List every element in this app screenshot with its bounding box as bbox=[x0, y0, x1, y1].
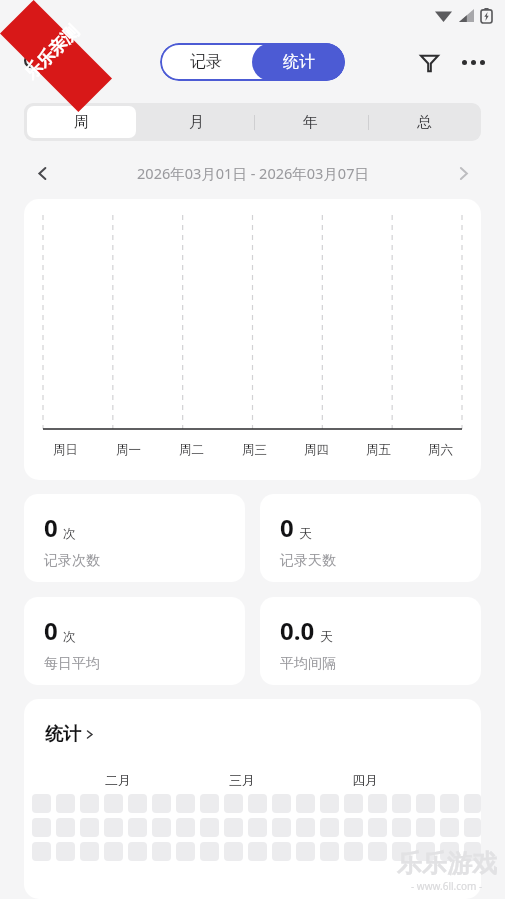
staticText: - www.6ll.com - bbox=[411, 879, 483, 893]
button[interactable]: Filter bbox=[407, 40, 451, 84]
button[interactable]: 周日 bbox=[24, 199, 481, 480]
button[interactable]: 0 bbox=[260, 494, 481, 582]
staticText: 记录 bbox=[190, 52, 222, 72]
staticText: 次 bbox=[63, 628, 76, 644]
staticText: 统计 bbox=[45, 723, 81, 746]
button[interactable]: 0 bbox=[24, 494, 245, 582]
staticText: 乐乐游戏 bbox=[397, 848, 497, 879]
button[interactable]: Next week bbox=[443, 155, 483, 191]
staticText: 2026年03月01日 - 2026年03月07日 bbox=[137, 163, 369, 183]
staticText: 周三 bbox=[242, 442, 267, 458]
staticText: 四月 bbox=[352, 772, 378, 788]
staticText: 平均间隔 bbox=[280, 655, 336, 673]
staticText: 天 bbox=[320, 628, 333, 644]
button[interactable]: 0.0 bbox=[260, 597, 481, 685]
staticText: 0 bbox=[44, 614, 58, 647]
staticText: 天 bbox=[299, 525, 312, 541]
staticText: 次 bbox=[63, 525, 76, 541]
button[interactable]: More options bbox=[451, 40, 495, 84]
button[interactable]: 0 bbox=[24, 597, 245, 685]
staticText: 周一 bbox=[116, 442, 141, 458]
staticText: 周五 bbox=[366, 442, 391, 458]
staticText: 三月 bbox=[229, 772, 255, 788]
staticText: 0.0 bbox=[280, 614, 315, 647]
button[interactable]: 记录 bbox=[160, 43, 252, 81]
staticText: 周四 bbox=[304, 442, 329, 458]
staticText: 总 bbox=[417, 113, 432, 132]
button[interactable]: 总 bbox=[370, 106, 478, 138]
staticText: 周日 bbox=[53, 442, 78, 458]
staticText: 周二 bbox=[179, 442, 204, 458]
button[interactable]: 月 bbox=[142, 106, 250, 138]
button[interactable]: 周 bbox=[27, 106, 136, 138]
button[interactable]: 统计 bbox=[45, 723, 95, 746]
staticText: 乐乐亲测 bbox=[20, 21, 83, 84]
staticText: 统计 bbox=[283, 52, 315, 72]
button[interactable]: 统计 bbox=[252, 43, 345, 81]
staticText: 周六 bbox=[428, 442, 453, 458]
staticText: 记录天数 bbox=[280, 552, 336, 570]
staticText: 月 bbox=[189, 113, 204, 132]
staticText: 周 bbox=[74, 113, 89, 132]
button[interactable]: Previous week bbox=[22, 155, 62, 191]
staticText: 每日平均 bbox=[44, 655, 100, 673]
button[interactable]: Search bbox=[12, 41, 54, 83]
staticText: 0 bbox=[280, 511, 294, 544]
staticText: 年 bbox=[303, 113, 318, 132]
staticText: 0 bbox=[44, 511, 58, 544]
staticText: 二月 bbox=[105, 772, 131, 788]
staticText: 记录次数 bbox=[44, 552, 100, 570]
button[interactable]: 年 bbox=[256, 106, 364, 138]
